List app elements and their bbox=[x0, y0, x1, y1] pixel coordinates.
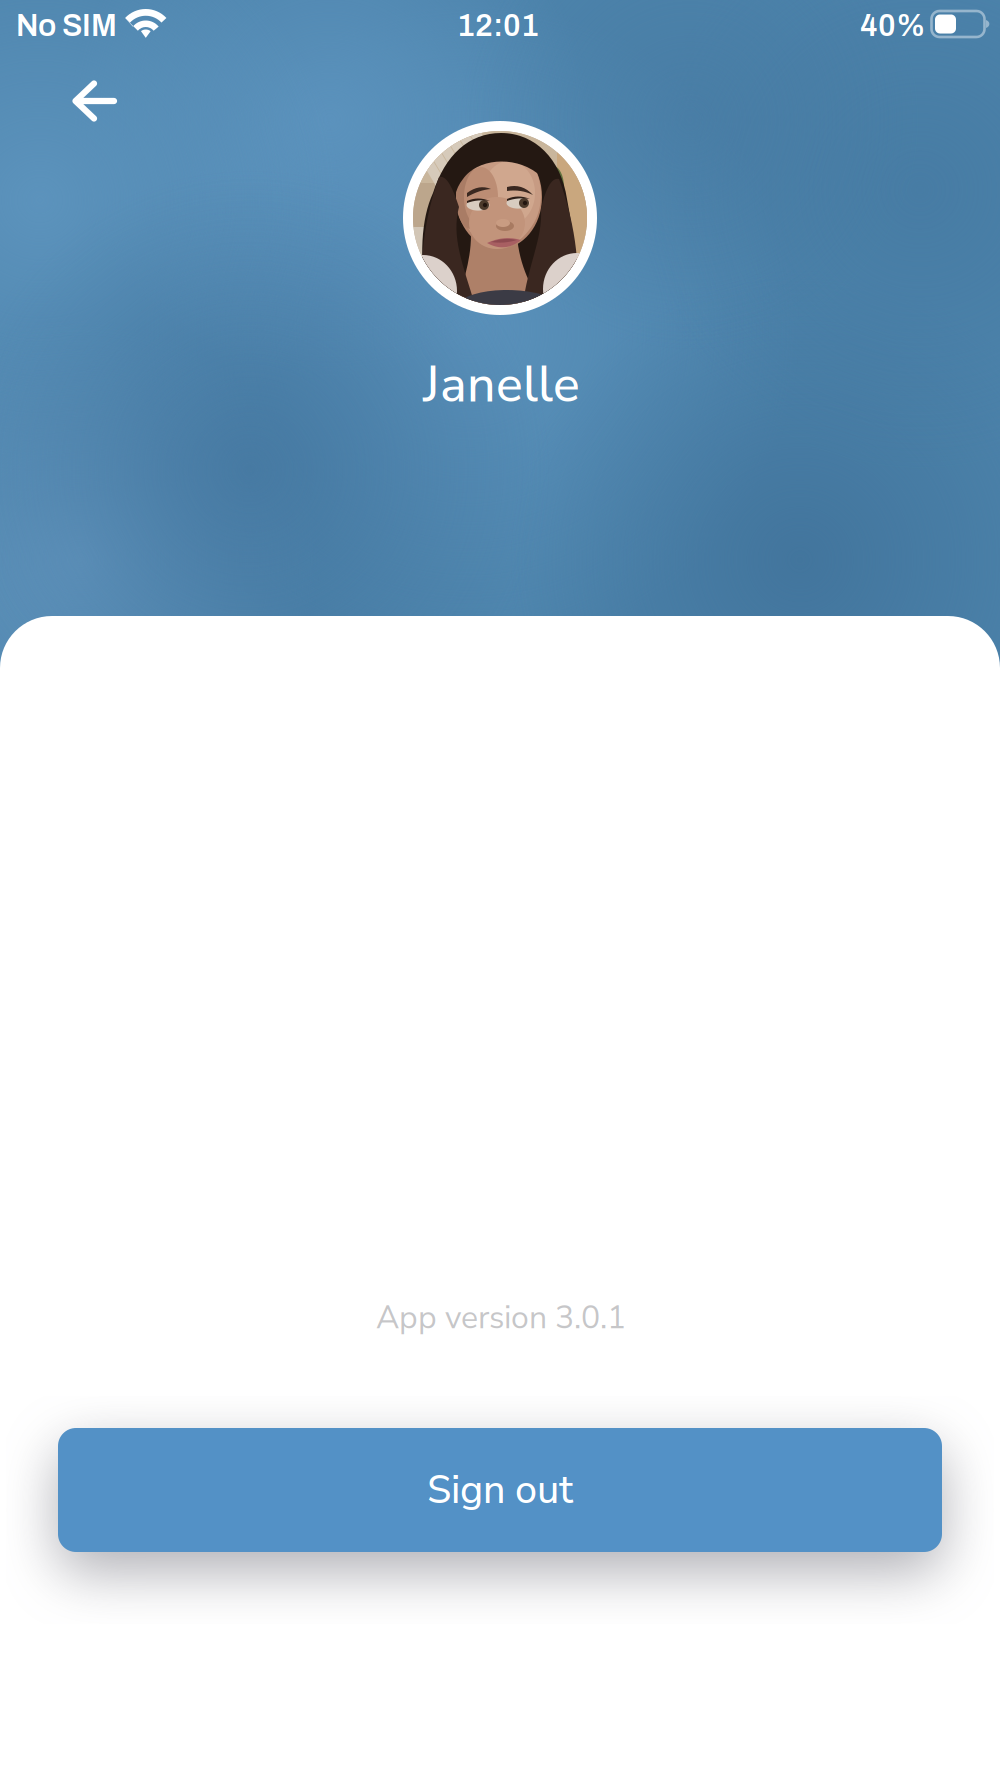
staticText: App version 3.0.1 bbox=[376, 1296, 626, 1340]
staticText: Sign out bbox=[427, 1463, 573, 1517]
staticText: Janelle bbox=[423, 351, 580, 419]
staticText: 12:01 bbox=[457, 9, 539, 42]
button[interactable]: Sign out bbox=[58, 1428, 942, 1552]
staticText: No SIM bbox=[16, 9, 117, 42]
staticText: 40% bbox=[860, 9, 926, 42]
button[interactable]: Back bbox=[50, 58, 139, 144]
